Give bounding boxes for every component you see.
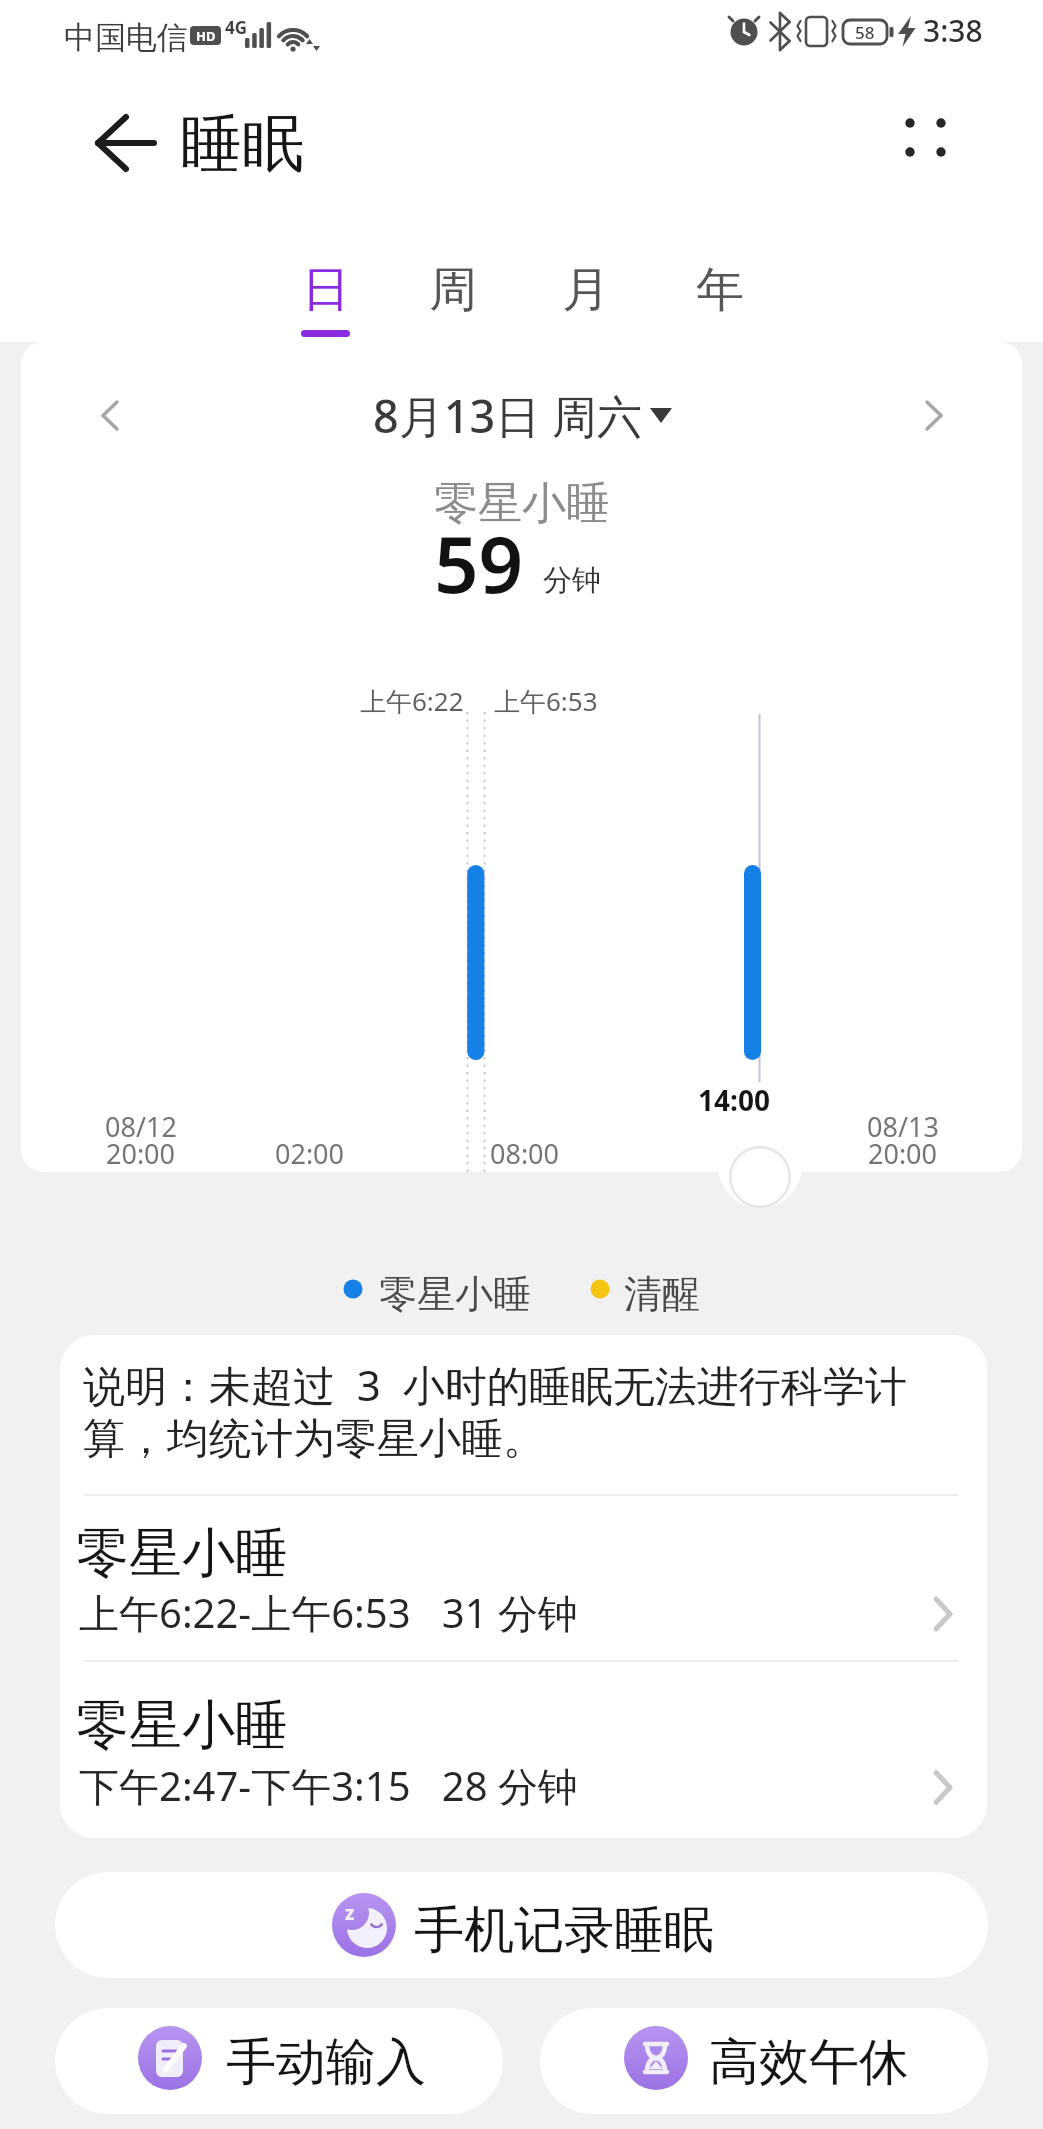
button[interactable] [80,108,170,178]
staticText: 零星小睡 [76,1692,288,1759]
button[interactable] [407,250,499,345]
staticText: 算，均统计为零星小睡。 [83,1413,545,1466]
staticText: 周 [429,260,477,320]
button[interactable] [360,385,690,447]
staticText: 08:00 [490,1135,560,1172]
staticText: 日 [302,260,350,320]
staticText: 手动输入 [226,2031,426,2094]
staticText: 8月13日 周六 [373,385,642,446]
staticText: 清醒 [624,1270,700,1318]
button[interactable] [60,1662,987,1838]
button[interactable] [60,1496,987,1660]
staticText: 59 [434,510,524,616]
staticText: HD [196,27,216,45]
button[interactable] [725,1140,795,1210]
staticText: 08/13 [867,1108,939,1145]
staticText: 分钟 [543,562,601,599]
button[interactable] [885,105,960,170]
staticText: 02:00 [275,1135,345,1172]
staticText: 20:00 [106,1135,176,1172]
staticText: 睡眠 [180,105,304,183]
button[interactable] [905,385,965,447]
staticText: 上午6:22-上午6:53 31 分钟 [79,1585,578,1640]
button[interactable] [540,250,632,345]
staticText: 零星小睡 [76,1520,288,1587]
staticText: 零星小睡 [379,1270,531,1318]
staticText: 年 [696,260,744,320]
staticText: 14:00 [698,1081,770,1119]
staticText: 08/12 [105,1108,177,1145]
staticText: 4G [225,16,248,39]
staticText: 月 [562,260,610,320]
button[interactable] [55,1872,988,1978]
staticText: 说明：未超过 3 小时的睡眠无法进行科学计 [83,1356,907,1413]
button[interactable] [540,2008,988,2114]
button[interactable] [55,2008,503,2114]
button[interactable] [674,250,766,345]
button[interactable] [280,250,372,345]
staticText: 上午6:53 [494,683,598,719]
staticText: 中国电信 [64,18,188,57]
staticText: 下午2:47-下午3:15 28 分钟 [79,1758,578,1813]
staticText: 零星小睡 [434,476,610,531]
staticText: 高效午休 [709,2031,909,2094]
staticText: 58 [855,21,875,44]
staticText: 3:38 [923,10,983,51]
staticText: z [345,1900,355,1926]
staticText: 上午6:22 [360,683,464,719]
staticText: 手机记录睡眠 [414,1899,714,1962]
staticText: 20:00 [868,1135,938,1172]
button[interactable] [80,385,140,447]
